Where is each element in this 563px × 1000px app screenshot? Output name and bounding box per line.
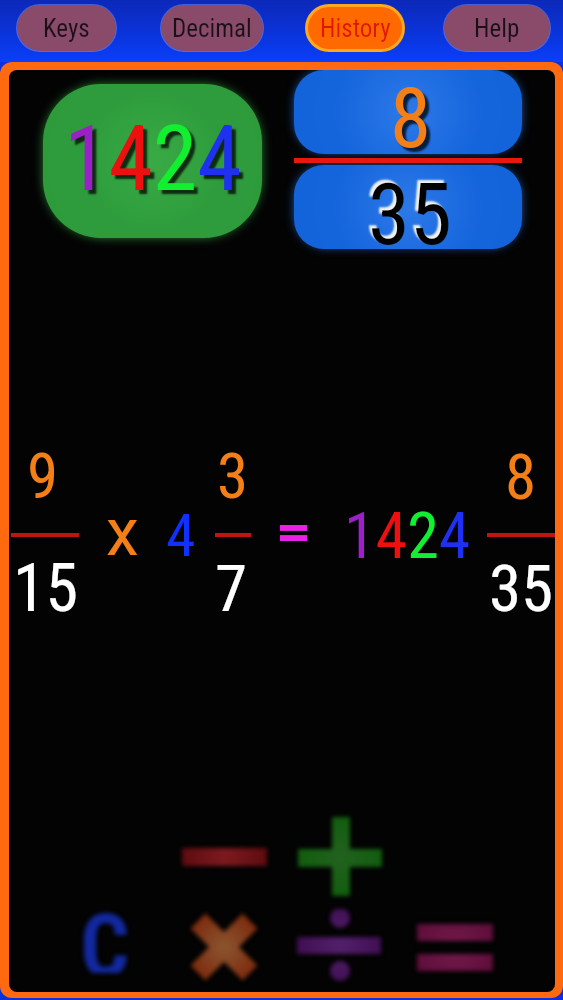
button[interactable]: History	[308, 7, 402, 49]
button[interactable]: Help	[444, 5, 550, 51]
button[interactable]: Keys	[17, 5, 116, 51]
staticText: 15	[13, 550, 79, 627]
staticText: 4	[166, 500, 196, 570]
button[interactable]: 35	[294, 165, 522, 249]
staticText: 9	[27, 440, 59, 514]
button[interactable]: 1424	[43, 84, 262, 238]
staticText: 1424	[64, 107, 242, 212]
staticText: 8	[505, 441, 537, 515]
staticText: 7	[215, 551, 248, 627]
staticText: 35	[368, 165, 452, 249]
button[interactable]: Plus	[298, 817, 382, 896]
button[interactable]: Equals	[417, 924, 493, 971]
staticText: x	[106, 494, 139, 571]
button[interactable]: 8	[294, 70, 522, 154]
button[interactable]: Minus	[182, 848, 267, 866]
button[interactable]: Decimal	[161, 5, 263, 51]
button[interactable]: Multiply	[189, 912, 259, 982]
staticText: 3	[217, 440, 249, 514]
staticText: 35	[489, 551, 554, 627]
staticText: History	[320, 14, 391, 43]
staticText: 1424	[344, 499, 471, 574]
button[interactable]: Divide	[297, 909, 381, 981]
staticText: Keys	[43, 14, 90, 43]
button[interactable]: Clear	[79, 904, 141, 982]
staticText: Help	[474, 14, 520, 43]
staticText: 8	[390, 70, 431, 154]
staticText: Decimal	[172, 14, 252, 43]
staticText: C	[80, 895, 130, 973]
